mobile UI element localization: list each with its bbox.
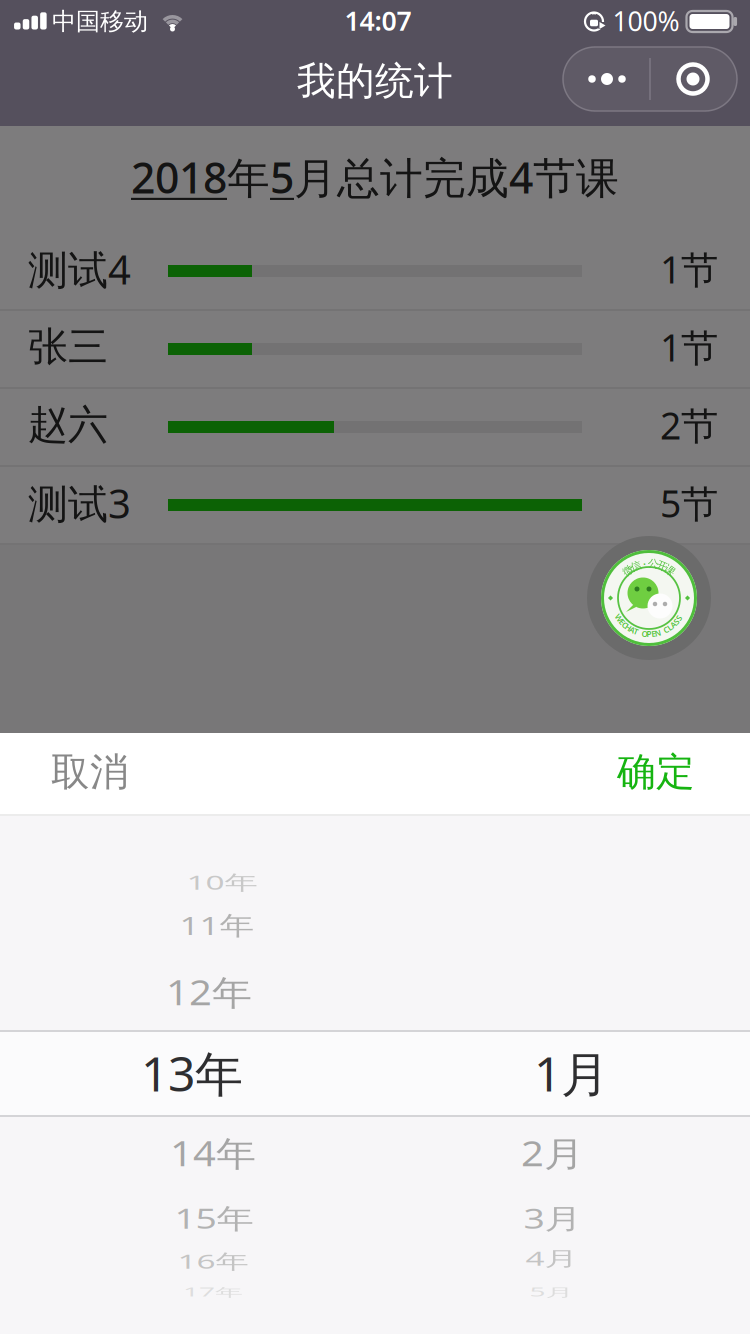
staticText: 100% xyxy=(612,3,679,39)
staticText: 12年 xyxy=(166,965,252,1018)
staticText: L xyxy=(668,622,672,633)
button[interactable]: 确定 xyxy=(581,732,731,812)
staticText: 张三 xyxy=(28,322,108,371)
staticText: 11年 xyxy=(179,902,254,948)
staticText: · xyxy=(643,557,646,571)
staticText: W xyxy=(615,613,623,623)
staticText: 14年 xyxy=(170,1126,256,1179)
button[interactable]: 取消 xyxy=(15,732,165,812)
staticText: 测试4 xyxy=(28,242,131,295)
staticText: 17年 xyxy=(183,1273,243,1311)
staticText: P xyxy=(646,629,651,639)
staticText: 4月 xyxy=(525,1236,577,1280)
staticText: 中国移动 xyxy=(52,7,148,36)
staticText: 微 xyxy=(623,564,634,577)
staticText: S xyxy=(674,616,678,627)
staticText: 取消 xyxy=(51,748,129,796)
staticText: A xyxy=(630,624,635,635)
staticText: 16年 xyxy=(177,1239,248,1283)
staticText: 1节 xyxy=(660,322,718,372)
staticText: 开 xyxy=(656,559,667,573)
staticText: E xyxy=(620,616,624,627)
staticText: 10年 xyxy=(186,860,257,904)
staticText: 5月 xyxy=(529,1273,573,1311)
staticText: E xyxy=(651,628,655,639)
staticText: 1月 xyxy=(534,1041,609,1105)
button[interactable]: 微 xyxy=(587,536,711,660)
staticText: 赵六 xyxy=(28,400,108,449)
staticText: 13年 xyxy=(141,1041,243,1105)
button[interactable] xyxy=(563,47,737,111)
staticText: 3月 xyxy=(523,1193,581,1243)
staticText: H xyxy=(625,622,631,633)
staticText: N xyxy=(655,628,661,638)
staticText: 课 xyxy=(664,564,675,577)
staticText: C xyxy=(663,624,668,635)
staticText: 1节 xyxy=(660,244,718,294)
staticText: O xyxy=(642,628,648,639)
staticText: 2节 xyxy=(660,400,718,450)
staticText: S xyxy=(677,613,681,623)
staticText: 14:07 xyxy=(344,3,411,38)
staticText xyxy=(639,628,641,638)
staticText: 15年 xyxy=(174,1193,253,1243)
staticText: 2018年5月总计完成4节课 xyxy=(131,149,619,205)
staticText: 测试3 xyxy=(28,476,131,529)
staticText: 5节 xyxy=(660,478,718,528)
staticText: 公 xyxy=(648,557,659,570)
staticText: 确定 xyxy=(617,748,695,796)
staticText: A xyxy=(671,619,676,630)
staticText: T xyxy=(634,626,639,637)
staticText: C xyxy=(622,619,627,630)
staticText xyxy=(661,626,663,637)
staticText: 信 xyxy=(630,559,641,573)
staticText: 我的统计 xyxy=(297,57,453,105)
staticText: 2月 xyxy=(521,1126,584,1179)
button[interactable]: 2018年5月总计完成4节课 xyxy=(131,149,619,205)
